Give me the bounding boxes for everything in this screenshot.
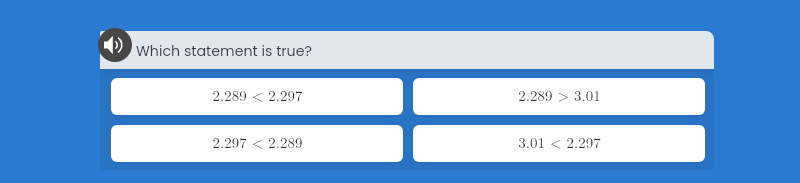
button[interactable]: 2.289 < 2.297 [111,78,403,115]
staticText: 2.289 < 2.297 [212,84,303,105]
staticText: 2.289 > 3.01 [518,84,601,105]
staticText: Which statement is true? [136,41,312,61]
button[interactable]: 2.289 > 3.01 [413,78,705,115]
staticText: 3.01 < 2.297 [518,131,601,152]
button[interactable]: 2.297 < 2.289 [111,125,403,162]
button[interactable]: 3.01 < 2.297 [413,125,705,162]
button[interactable]: Play question audio [98,28,132,62]
staticText: 2.297 < 2.289 [212,131,303,152]
